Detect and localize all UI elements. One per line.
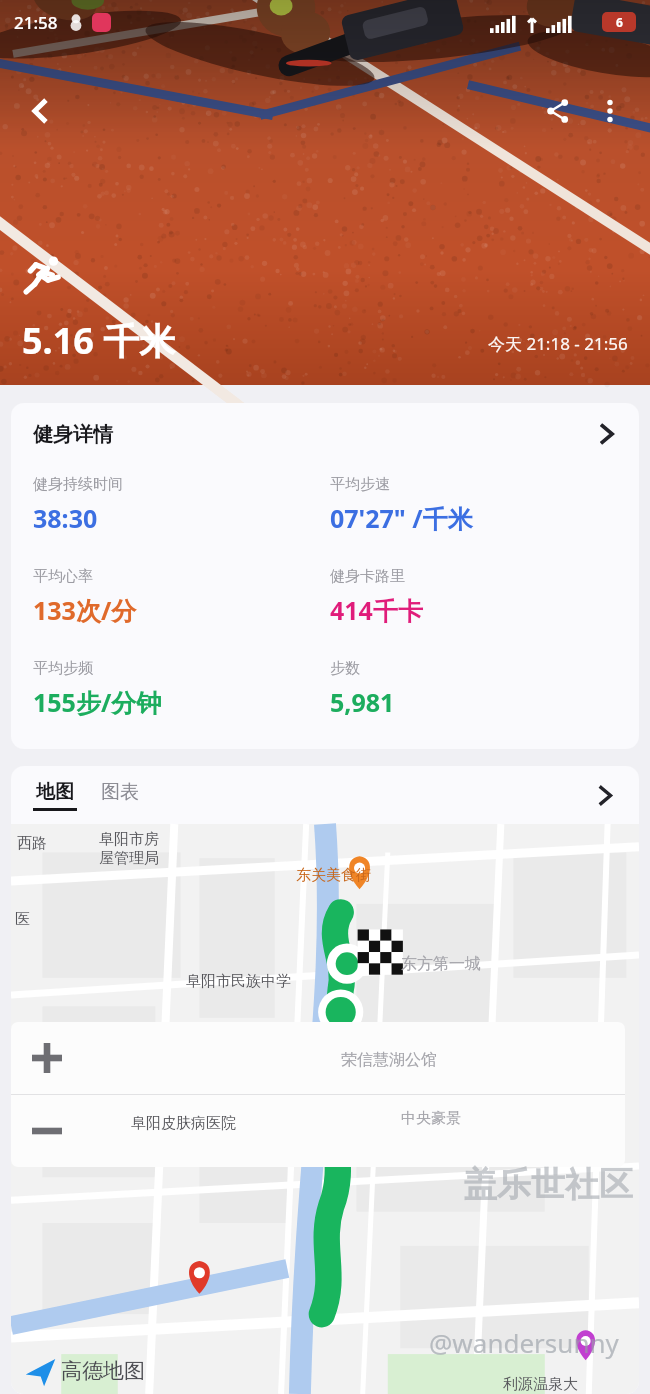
staticText: 图表: [101, 780, 139, 804]
staticText: 155步/分钟: [33, 685, 162, 719]
staticText: 38:30: [33, 501, 98, 535]
staticText: 平均步速: [330, 475, 390, 494]
staticText: 07'27" /千米: [330, 501, 473, 535]
button[interactable]: 健身详情: [11, 403, 639, 749]
staticText: 平均步频: [33, 659, 93, 678]
staticText: 阜阳市民族中学: [186, 972, 291, 991]
staticText: 阜阳市房: [99, 830, 159, 849]
staticText: 21:58: [14, 11, 58, 34]
button[interactable]: Zoom in: [11, 1022, 83, 1094]
staticText: 地图: [36, 780, 74, 804]
staticText: 平均心率: [33, 567, 93, 586]
staticText: @wandersunny: [429, 1325, 619, 1360]
staticText: 东方第一城: [401, 954, 481, 974]
button[interactable]: Open map: [590, 780, 620, 810]
staticText: 6: [616, 14, 623, 30]
staticText: 西路: [17, 834, 47, 853]
staticText: 高德地图: [61, 1358, 145, 1384]
staticText: 东关美食街: [296, 866, 371, 885]
button[interactable]: Back: [14, 85, 66, 137]
button[interactable]: Share: [532, 85, 584, 137]
staticText: 中央豪景: [401, 1109, 461, 1128]
button[interactable]: 图表: [101, 780, 139, 811]
button[interactable]: Zoom in: [11, 824, 639, 1394]
staticText: 健身详情: [33, 422, 113, 447]
button[interactable]: More options: [584, 85, 636, 137]
button[interactable]: Zoom out: [11, 1095, 83, 1167]
staticText: 133次/分: [33, 593, 137, 627]
staticText: 利源温泉大: [503, 1375, 578, 1394]
staticText: 步数: [330, 659, 360, 678]
staticText: 屋管理局: [99, 849, 159, 868]
staticText: 5.16 千米: [22, 316, 176, 365]
staticText: 健身持续时间: [33, 475, 123, 494]
staticText: 荣信慧湖公馆: [341, 1050, 437, 1070]
staticText: 5,981: [330, 685, 395, 719]
button[interactable]: 地图: [33, 780, 77, 811]
staticText: 盖乐世社区: [463, 1163, 633, 1206]
staticText: 阜阳皮肤病医院: [131, 1114, 236, 1133]
staticText: 健身卡路里: [330, 567, 405, 586]
staticText: 414千卡: [330, 593, 423, 627]
staticText: 医: [15, 910, 30, 929]
staticText: 今天 21:18 - 21:56: [488, 332, 628, 355]
